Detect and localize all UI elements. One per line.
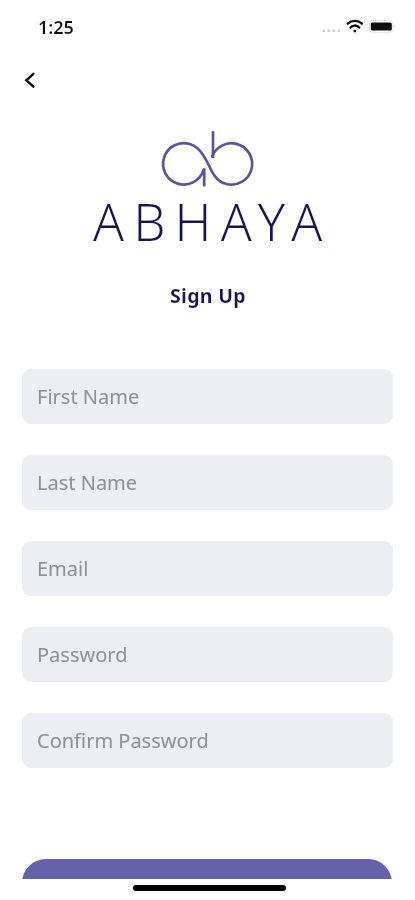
button[interactable]: Last Name: [22, 455, 393, 510]
button[interactable]: Sign Up: [22, 859, 392, 879]
button[interactable]: Password: [22, 627, 393, 682]
button[interactable]: First Name: [22, 369, 393, 424]
button[interactable]: Confirm Password: [22, 713, 393, 768]
staticText: Email: [37, 555, 89, 582]
staticText: First Name: [37, 383, 140, 410]
staticText: 1:25: [38, 15, 74, 40]
staticText: Sign Up: [170, 282, 246, 309]
staticText: Confirm Password: [37, 727, 209, 754]
button[interactable]: Back: [14, 64, 46, 96]
button[interactable]: Email: [22, 541, 393, 596]
staticText: ABHAYA: [93, 186, 332, 255]
staticText: Last Name: [37, 469, 138, 496]
staticText: Password: [37, 641, 128, 668]
